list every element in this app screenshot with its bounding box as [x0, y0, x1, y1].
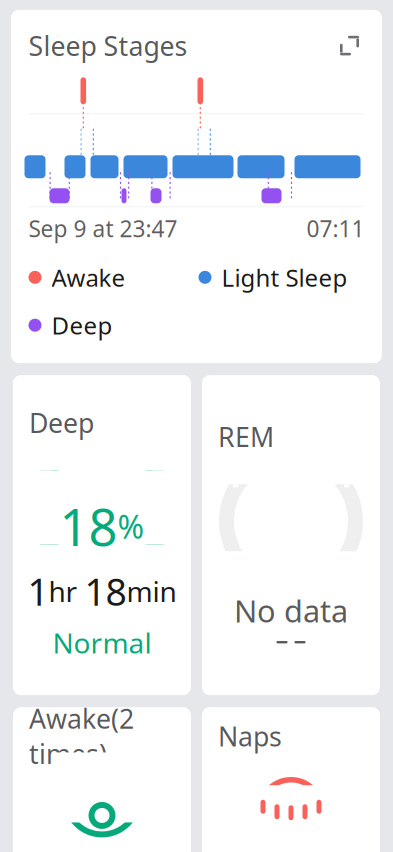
- staticText: Normal: [52, 624, 151, 661]
- staticText: Deep: [29, 405, 94, 440]
- staticText: No data: [234, 590, 348, 631]
- staticText: Sleep Stages: [28, 28, 187, 63]
- staticText: 18: [59, 493, 117, 560]
- staticText: Naps: [218, 718, 282, 754]
- staticText: Awake: [51, 261, 125, 293]
- staticText: Sep 9 at 23:47: [28, 213, 177, 243]
- staticText: Awake(2 times): [29, 701, 134, 771]
- staticText: %: [117, 505, 144, 548]
- staticText: REM: [218, 419, 274, 454]
- staticText: Light Sleep: [221, 261, 347, 293]
- button[interactable]: Expand Sleep Stages: [334, 31, 364, 61]
- staticText: Deep: [51, 309, 112, 341]
- staticText: 18: [84, 566, 126, 616]
- staticText: hr: [48, 573, 84, 610]
- staticText: 1: [27, 566, 48, 616]
- staticText: min: [126, 573, 176, 610]
- staticText: 07:11: [306, 213, 364, 243]
